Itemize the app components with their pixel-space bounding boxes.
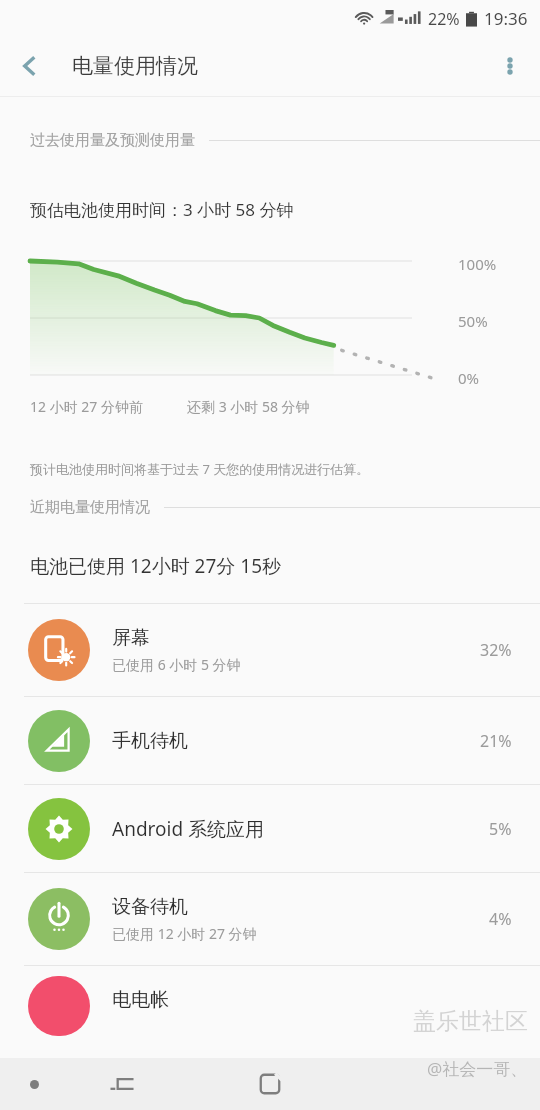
staticText: 4% xyxy=(489,908,512,930)
staticText: 已使用 6 小时 5 分钟 xyxy=(112,655,241,674)
button[interactable]: 电电帐 xyxy=(0,966,540,1026)
staticText: Android 系统应用 xyxy=(112,816,265,842)
button[interactable]: Back xyxy=(240,1058,300,1110)
staticText: 过去使用量及预测使用量 xyxy=(30,131,195,150)
staticText: 预估电池使用时间：3 小时 58 分钟 xyxy=(30,198,294,221)
staticText: 32% xyxy=(480,639,512,661)
staticText: 电电帐 xyxy=(112,988,169,1012)
button[interactable]: More options xyxy=(480,36,540,96)
button[interactable]: 设备待机 xyxy=(0,873,540,965)
staticText: 预计电池使用时间将基于过去 7 天您的使用情况进行估算。 xyxy=(30,460,370,478)
button[interactable]: Menu xyxy=(22,1058,540,1110)
staticText: 手机待机 xyxy=(112,729,188,753)
staticText: 21% xyxy=(480,730,512,752)
staticText: 近期电量使用情况 xyxy=(30,498,150,517)
staticText: 100% xyxy=(458,254,497,274)
staticText: @社会一哥、 xyxy=(427,1057,528,1080)
staticText: 0% xyxy=(458,368,480,388)
staticText: 还剩 3 小时 58 分钟 xyxy=(187,397,310,416)
staticText: 12 小时 27 分钟前 xyxy=(30,397,143,416)
staticText: 5% xyxy=(489,818,512,840)
staticText: 电量使用情况 xyxy=(72,53,198,79)
staticText: 19:36 xyxy=(484,7,528,30)
button[interactable]: Android 系统应用 xyxy=(0,785,540,872)
staticText: 50% xyxy=(458,311,488,331)
button[interactable]: 屏幕 xyxy=(0,604,540,696)
button[interactable]: Recents xyxy=(92,1058,152,1110)
button[interactable]: 手机待机 xyxy=(0,697,540,784)
staticText: 22% xyxy=(428,8,460,30)
staticText: 已使用 12 小时 27 分钟 xyxy=(112,924,257,943)
staticText: 设备待机 xyxy=(112,895,188,919)
staticText: 电池已使用 12小时 27分 15秒 xyxy=(30,553,282,579)
staticText: 屏幕 xyxy=(112,626,150,650)
button[interactable]: Back xyxy=(0,36,60,96)
staticText: 盖乐世社区 xyxy=(413,1007,528,1036)
